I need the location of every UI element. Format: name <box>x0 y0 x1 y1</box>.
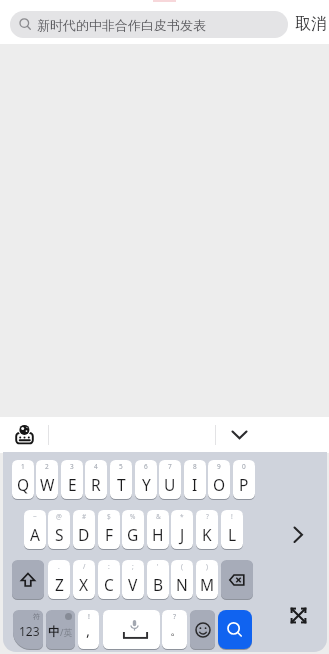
button[interactable] <box>289 606 308 625</box>
staticText: ) <box>206 562 208 571</box>
staticText: ' <box>157 562 159 571</box>
staticText: / <box>83 562 86 571</box>
staticText: G <box>127 524 139 545</box>
staticText: T <box>117 474 126 495</box>
button[interactable]: % <box>122 510 144 549</box>
button[interactable] <box>190 610 215 649</box>
staticText: ? <box>173 612 177 622</box>
staticText: Q <box>17 474 30 495</box>
staticText: J <box>180 524 185 545</box>
button[interactable]: ' <box>147 560 169 599</box>
button[interactable]: ~ <box>24 510 46 549</box>
button[interactable] <box>218 610 252 649</box>
button[interactable]: # <box>73 510 95 549</box>
button[interactable]: $ <box>98 510 120 549</box>
staticText: @ <box>56 512 62 521</box>
staticText: L <box>228 524 237 545</box>
button[interactable] <box>221 560 253 599</box>
button[interactable]: 4 <box>85 460 107 499</box>
button[interactable]: ( <box>171 560 193 599</box>
staticText: X <box>79 574 89 595</box>
staticText: 3 <box>70 462 74 471</box>
button[interactable] <box>103 610 160 649</box>
button[interactable]: 5 <box>110 460 132 499</box>
button[interactable]: ) <box>196 560 218 599</box>
button[interactable]: / <box>73 560 95 599</box>
staticText: 9 <box>217 462 221 471</box>
staticText: /英 <box>60 626 73 638</box>
staticText: # <box>82 512 87 521</box>
button[interactable]: & <box>147 510 169 549</box>
staticText: M <box>200 574 215 595</box>
staticText: E <box>68 474 77 495</box>
staticText: 中 <box>48 624 60 639</box>
button[interactable]: ? <box>196 510 218 549</box>
staticText: 6 <box>144 462 148 471</box>
staticText: 2 <box>45 462 49 471</box>
button[interactable]: 中 <box>46 610 75 649</box>
staticText: D <box>78 524 90 545</box>
staticText: O <box>213 474 226 495</box>
staticText: 5 <box>119 462 123 471</box>
staticText: 123 <box>19 623 40 639</box>
staticText: S <box>55 524 64 545</box>
staticText: 4 <box>94 462 98 471</box>
staticText: I <box>192 474 198 495</box>
staticText: H <box>152 524 164 545</box>
staticText: ; <box>132 562 134 571</box>
staticText: ? <box>206 512 209 521</box>
staticText: W <box>40 474 55 495</box>
staticText: ( <box>181 562 183 571</box>
button[interactable]: ! <box>221 510 243 549</box>
staticText: B <box>153 574 164 595</box>
staticText: 1 <box>21 462 25 471</box>
staticText: P <box>239 474 249 495</box>
button[interactable]: : <box>98 560 120 599</box>
staticText: . <box>58 562 60 571</box>
staticText: C <box>104 574 114 595</box>
button[interactable]: 2 <box>36 460 58 499</box>
staticText: 。 <box>170 622 183 638</box>
staticText: : <box>108 562 110 571</box>
button[interactable] <box>15 424 34 444</box>
staticText: , <box>86 620 91 640</box>
staticText: 新时代的中非合作白皮书发表 <box>37 17 206 33</box>
staticText: 符 <box>33 612 40 621</box>
staticText: & <box>156 512 161 521</box>
staticText: K <box>202 524 212 545</box>
button[interactable]: ? <box>162 610 187 649</box>
staticText: Y <box>142 474 151 495</box>
button[interactable] <box>12 560 44 599</box>
staticText: * <box>180 512 184 521</box>
staticText: $ <box>107 512 111 521</box>
staticText: V <box>128 574 138 595</box>
button[interactable]: 8 <box>184 460 206 499</box>
button[interactable]: 1 <box>12 460 34 499</box>
button[interactable]: 取消 <box>292 12 329 36</box>
staticText: N <box>176 574 188 595</box>
staticText: % <box>130 512 136 521</box>
button[interactable]: ! <box>78 610 99 649</box>
staticText: ! <box>231 512 233 521</box>
button[interactable]: 3 <box>61 460 83 499</box>
staticText: ! <box>88 612 90 622</box>
button[interactable] <box>231 430 249 441</box>
button[interactable]: ; <box>122 560 144 599</box>
staticText: ~ <box>33 512 37 521</box>
staticText: R <box>91 474 101 495</box>
staticText: Z <box>55 574 64 595</box>
button[interactable]: @ <box>48 510 70 549</box>
button[interactable]: * <box>171 510 193 549</box>
button[interactable]: . <box>48 560 70 599</box>
button[interactable]: 7 <box>159 460 181 499</box>
staticText: 0 <box>242 462 246 471</box>
button[interactable]: 新时代的中非合作白皮书发表 <box>10 11 288 38</box>
staticText: 取消 <box>295 14 327 34</box>
button[interactable] <box>292 526 305 545</box>
button[interactable]: 符 <box>13 610 43 649</box>
button[interactable]: 6 <box>135 460 157 499</box>
button[interactable]: 9 <box>208 460 230 499</box>
button[interactable]: 0 <box>233 460 255 499</box>
staticText: U <box>164 474 176 495</box>
staticText: F <box>105 524 114 545</box>
